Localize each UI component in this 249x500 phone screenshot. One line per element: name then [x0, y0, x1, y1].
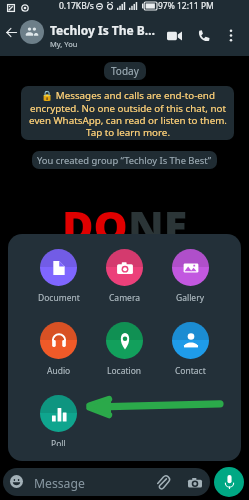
button[interactable]: Back — [1, 22, 22, 43]
button[interactable]: Document — [26, 249, 91, 304]
button[interactable]: Audio — [26, 322, 91, 377]
staticText: Gallery — [176, 292, 204, 304]
button[interactable]: Group photo — [20, 20, 44, 44]
button[interactable]: Techloy Is The B… — [50, 22, 155, 49]
staticText: Document — [38, 292, 80, 304]
staticText: Camera — [109, 292, 140, 304]
button[interactable]: Video call — [161, 23, 187, 49]
button[interactable]: Message — [3, 468, 210, 496]
button[interactable]: Poll — [26, 395, 91, 446]
staticText: Today — [111, 64, 139, 78]
staticText: 97% 12:11 PM — [158, 0, 214, 12]
button[interactable]: Gallery — [157, 249, 223, 304]
staticText: Location — [107, 365, 142, 377]
staticText: Poll — [51, 438, 66, 446]
staticText: Message — [34, 475, 85, 492]
staticText: 🔒 Messages and calls are end-to-end encr… — [29, 89, 227, 138]
staticText: Techloy Is The B… — [50, 22, 155, 38]
button[interactable]: Location — [91, 322, 157, 377]
staticText: Contact — [175, 365, 206, 377]
button[interactable]: Contact — [157, 322, 223, 377]
staticText: You created group “Techloy Is The Best” — [37, 154, 212, 167]
button[interactable]: 🔒 Messages and calls are end-to-end encr… — [21, 86, 234, 140]
button[interactable]: Attach — [151, 471, 173, 493]
button[interactable]: Voice call — [191, 23, 217, 49]
staticText: Audio — [47, 365, 71, 377]
button[interactable]: More options — [219, 23, 243, 47]
button[interactable]: Camera — [184, 472, 206, 494]
staticText: My, You — [50, 39, 78, 49]
button[interactable]: Record voice message — [214, 467, 244, 497]
staticText: DO — [62, 196, 128, 255]
button[interactable]: Camera — [91, 249, 157, 304]
staticText: 0.17KB/s — [59, 0, 94, 12]
staticText: NE — [128, 196, 188, 255]
